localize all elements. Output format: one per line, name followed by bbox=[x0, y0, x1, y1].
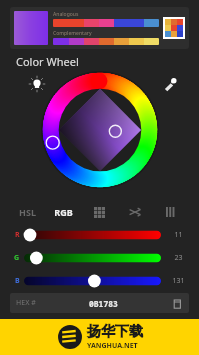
staticText: 0B1783 bbox=[89, 298, 118, 309]
button[interactable] bbox=[24, 273, 161, 289]
button[interactable]: 扬华下载 bbox=[0, 319, 199, 355]
button[interactable] bbox=[53, 19, 159, 27]
staticText: 131 bbox=[172, 276, 185, 286]
button[interactable]: Shuffle bbox=[117, 201, 153, 223]
button[interactable]: HEX # bbox=[10, 293, 189, 313]
staticText: B bbox=[15, 276, 20, 286]
staticText: 23 bbox=[174, 253, 183, 263]
staticText: RGB bbox=[54, 206, 73, 218]
staticText: 扬华下载 bbox=[87, 323, 143, 341]
staticText: HEX # bbox=[16, 298, 36, 308]
button[interactable]: Palettes bbox=[165, 19, 183, 37]
button[interactable] bbox=[14, 11, 48, 45]
button[interactable]: RGB bbox=[45, 201, 81, 223]
staticText: Color Wheel bbox=[16, 54, 79, 69]
button[interactable]: Analogous bbox=[10, 7, 189, 49]
staticText: Analogous bbox=[53, 11, 79, 18]
staticText: 11 bbox=[174, 230, 183, 240]
staticText: HSL bbox=[19, 206, 36, 218]
button[interactable]: Grid view bbox=[81, 201, 117, 223]
button[interactable] bbox=[24, 250, 161, 266]
button[interactable]: HSL bbox=[10, 201, 45, 223]
staticText: Complementary bbox=[53, 30, 92, 37]
button[interactable] bbox=[41, 71, 159, 189]
staticText: G bbox=[14, 253, 20, 263]
staticText: YANGHUA.NET bbox=[87, 341, 138, 351]
button[interactable]: Bars bbox=[153, 201, 189, 223]
staticText: R bbox=[15, 230, 20, 240]
button[interactable] bbox=[53, 38, 159, 45]
button[interactable]: Brightness bbox=[26, 73, 48, 95]
button[interactable] bbox=[24, 227, 161, 243]
button[interactable]: Eyedropper bbox=[159, 73, 181, 95]
button[interactable]: Copy hex bbox=[170, 297, 183, 310]
